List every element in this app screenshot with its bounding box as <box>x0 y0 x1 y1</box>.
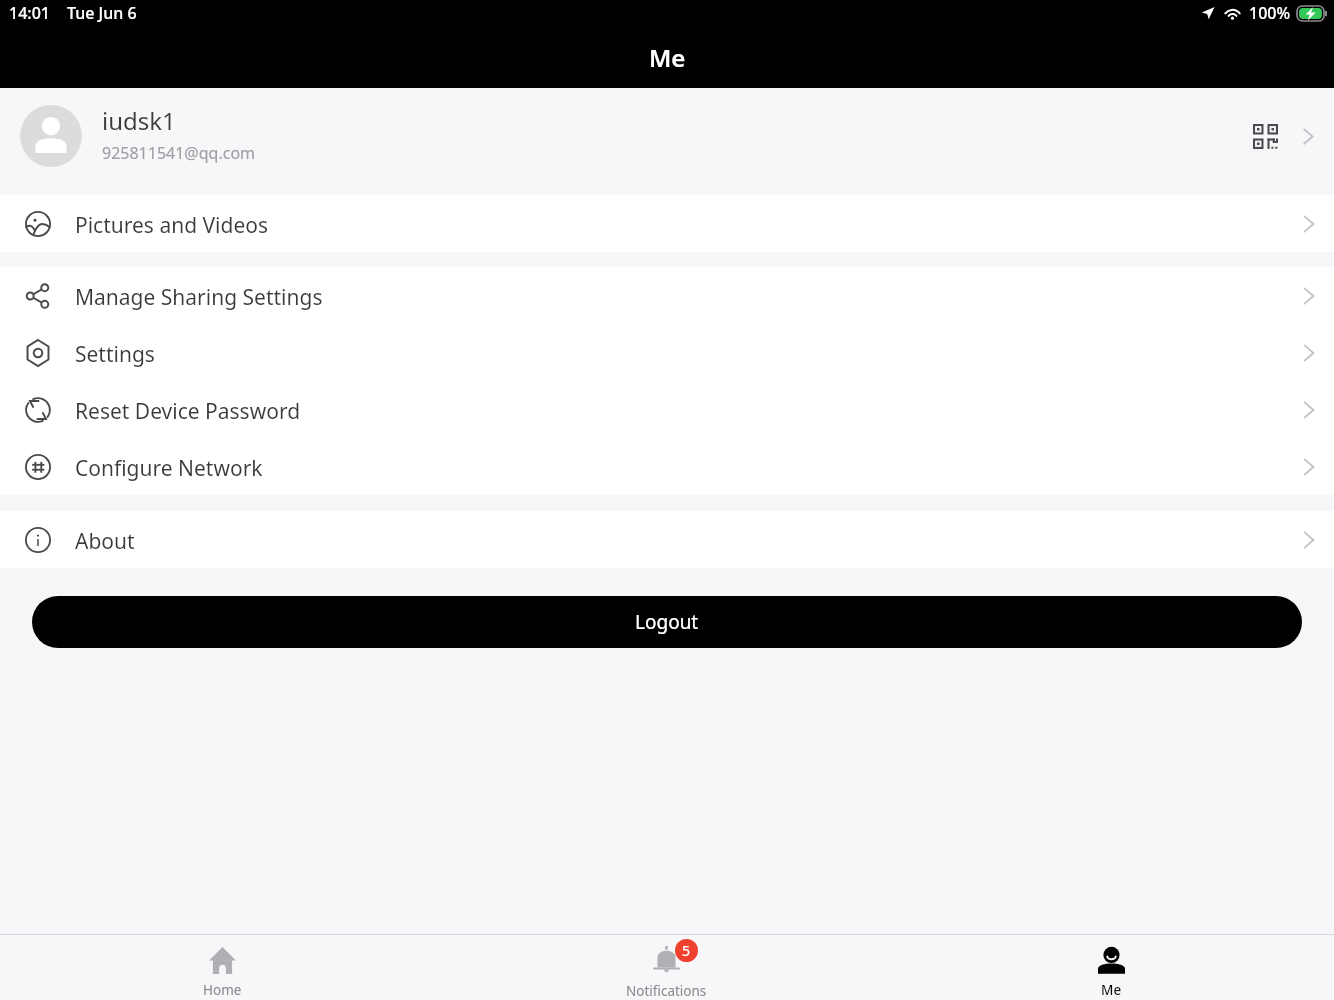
staticText: 925811541@qq.com <box>102 142 256 164</box>
button[interactable]: Logout <box>32 596 1302 648</box>
button[interactable]: Pictures and Videos <box>0 195 1334 252</box>
button[interactable]: About <box>0 511 1334 568</box>
staticText: Pictures and Videos <box>75 211 269 240</box>
staticText: Tue Jun 6 <box>67 2 137 24</box>
button[interactable]: Scan QR code <box>1248 119 1282 153</box>
button[interactable]: Configure Network <box>0 438 1334 495</box>
staticText: Notifications <box>626 982 707 1000</box>
staticText: 100% <box>1249 2 1291 24</box>
button[interactable]: 5 <box>444 935 889 1000</box>
staticText: Reset Device Password <box>75 397 301 426</box>
button[interactable]: Me <box>889 935 1334 999</box>
staticText: iudsk1 <box>102 104 176 137</box>
button[interactable]: Home <box>0 935 444 999</box>
staticText: 14:01 <box>9 2 50 24</box>
staticText: About <box>75 527 135 556</box>
staticText: Me <box>1101 981 1122 999</box>
staticText: Me <box>649 41 686 74</box>
staticText: Home <box>203 981 242 999</box>
button[interactable]: iudsk1 <box>0 88 1334 195</box>
button[interactable]: Manage Sharing Settings <box>0 267 1334 324</box>
staticText: Configure Network <box>75 454 263 483</box>
staticText: Settings <box>75 340 155 369</box>
staticText: Manage Sharing Settings <box>75 283 323 312</box>
staticText: 5 <box>682 941 691 960</box>
button[interactable]: Settings <box>0 324 1334 381</box>
staticText: Logout <box>635 609 699 635</box>
button[interactable]: Reset Device Password <box>0 381 1334 438</box>
other: Open account details <box>1297 127 1316 146</box>
